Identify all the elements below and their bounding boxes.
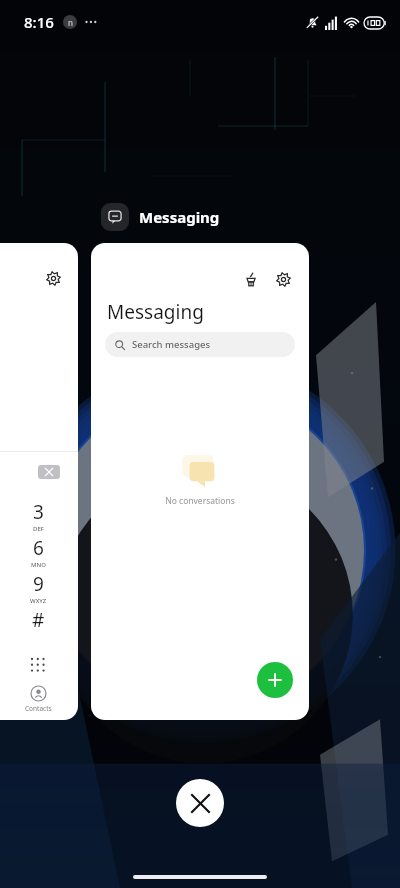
staticText: No conversations <box>165 495 235 507</box>
staticText: MNO <box>31 561 46 569</box>
button[interactable]: Settings <box>0 243 78 720</box>
button[interactable]: Settings <box>271 267 295 291</box>
button[interactable]: Dialpad <box>20 647 56 683</box>
button[interactable]: New conversation <box>257 662 293 698</box>
button[interactable]: Clean up <box>239 267 263 291</box>
staticText: WXYZ <box>30 597 47 605</box>
staticText: 9 <box>33 571 44 597</box>
staticText: DEF <box>33 525 44 533</box>
button[interactable]: Clean up <box>91 243 309 720</box>
staticText: 6 <box>33 535 44 561</box>
staticText: Contacts <box>25 704 52 713</box>
button[interactable]: 9 <box>20 571 56 605</box>
button[interactable]: 6 <box>20 535 56 569</box>
button[interactable]: 3 <box>20 499 56 533</box>
staticText: # <box>32 607 45 633</box>
staticText: n <box>68 17 73 28</box>
button[interactable]: # <box>20 607 56 641</box>
button[interactable]: Search messages <box>105 332 295 357</box>
staticText: Messaging <box>107 299 204 325</box>
button[interactable]: Contacts <box>12 686 64 718</box>
staticText: Search messages <box>132 338 211 351</box>
button[interactable]: Close all <box>176 779 224 827</box>
staticText: 3 <box>33 499 44 525</box>
staticText: Messaging <box>139 207 220 227</box>
button[interactable]: Messaging <box>101 203 220 231</box>
button[interactable]: Settings <box>42 267 64 289</box>
staticText: 8:16 <box>24 12 54 32</box>
button[interactable]: Backspace <box>38 465 60 479</box>
